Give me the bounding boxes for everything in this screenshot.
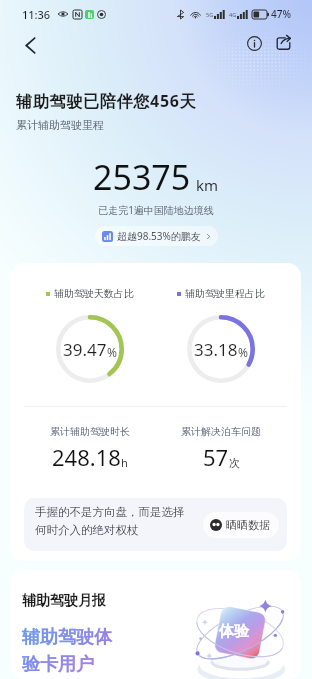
staticText: 5G (206, 11, 214, 18)
staticText: 47% (271, 7, 291, 21)
staticText: 11:36 (22, 7, 51, 22)
staticText: % (107, 344, 117, 360)
staticText: 验卡用户 (22, 653, 94, 676)
staticText: 累计辅助驾驶里程 (16, 118, 104, 132)
staticText: 辅助驾驶天数占比 (54, 287, 134, 300)
staticText: 辅助驾驶体 (22, 626, 112, 649)
staticText: 体验 (219, 622, 249, 641)
staticText: 4G (229, 11, 237, 18)
staticText: 57 (203, 442, 229, 472)
staticText: 248.18 (52, 442, 121, 472)
staticText: 超越98.53%的鹏友 (117, 229, 201, 243)
button[interactable]: Share (270, 30, 296, 56)
button[interactable]: 超越98.53%的鹏友 (95, 226, 218, 246)
staticText: h (121, 455, 128, 470)
staticText: 辅助驾驶已陪伴您456天 (16, 90, 197, 112)
staticText: 25375 (93, 154, 191, 200)
staticText: 39.47 (63, 338, 107, 361)
staticText: 辅助驾驶里程占比 (185, 287, 265, 300)
staticText: 33.18 (194, 338, 238, 361)
staticText: 累计解决泊车问题 (181, 425, 261, 438)
button[interactable]: Info (241, 30, 267, 56)
staticText: km (196, 175, 219, 195)
staticText: 次 (229, 456, 240, 470)
staticText: 累计辅助驾驶时长 (50, 425, 130, 438)
staticText: 何时介入的绝对权杖 (35, 523, 139, 537)
staticText: % (238, 344, 248, 360)
staticText: 手握的不是方向盘，而是选择 (35, 505, 185, 519)
button[interactable]: 晒晒数据 (203, 512, 279, 538)
staticText: 已走完1遍中国陆地边境线 (0, 203, 312, 217)
staticText: 辅助驾驶月报 (22, 592, 106, 610)
staticText: 晒晒数据 (226, 518, 270, 532)
button[interactable]: Back (17, 30, 43, 56)
